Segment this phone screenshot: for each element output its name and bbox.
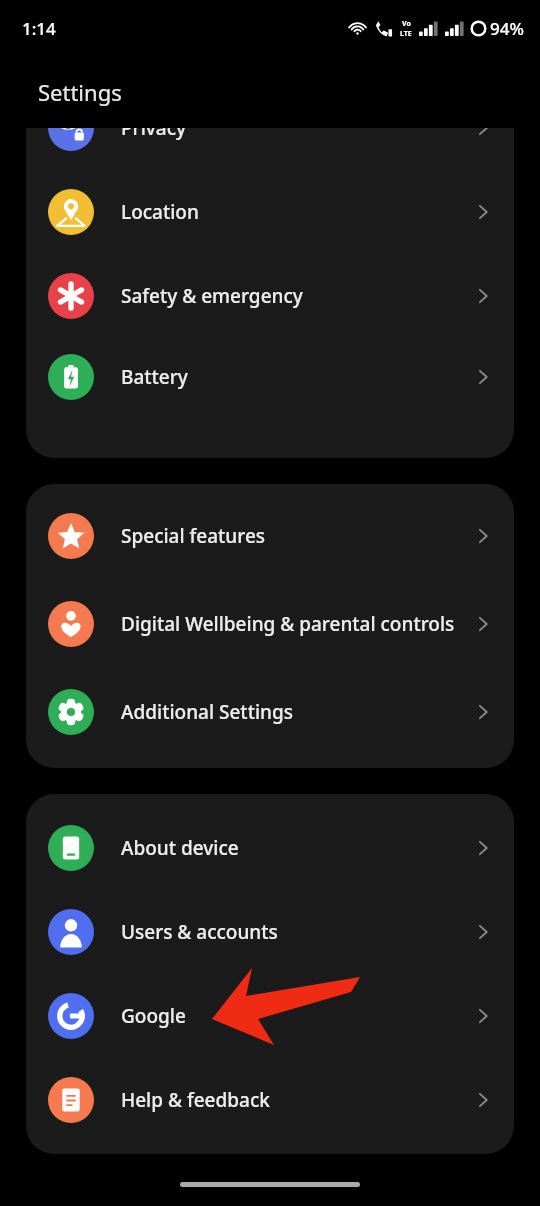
staticText: Safety & emergency (121, 283, 462, 309)
button[interactable]: Battery (26, 338, 514, 416)
staticText: Digital Wellbeing & parental controls (121, 611, 462, 637)
staticText: Additional Settings (121, 699, 462, 725)
staticText: Help & feedback (121, 1087, 462, 1113)
button[interactable]: Special features (26, 494, 514, 578)
other: Annotation arrow pointing at Google (0, 0, 540, 1206)
staticText: About device (121, 835, 462, 861)
staticText: LTE (400, 29, 412, 39)
staticText: Location (121, 199, 462, 225)
staticText: 94% (490, 17, 524, 40)
staticText: Google (121, 1003, 462, 1029)
staticText: Battery (121, 364, 462, 390)
staticText: Settings (38, 77, 122, 107)
button[interactable]: Additional Settings (26, 670, 514, 754)
button[interactable]: Help & feedback (26, 1058, 514, 1142)
staticText: Vo (402, 19, 411, 29)
staticText: Users & accounts (121, 919, 462, 945)
button[interactable]: Location (26, 170, 514, 254)
button[interactable]: Digital Wellbeing & parental controls (26, 578, 514, 670)
staticText: Privacy (121, 128, 462, 141)
button[interactable]: About device (26, 806, 514, 890)
button[interactable]: Users & accounts (26, 890, 514, 974)
button[interactable]: Google (26, 974, 514, 1058)
staticText: 1:14 (22, 17, 56, 40)
button[interactable]: Safety & emergency (26, 254, 514, 338)
staticText: Special features (121, 523, 462, 549)
button[interactable]: Privacy (26, 128, 514, 170)
